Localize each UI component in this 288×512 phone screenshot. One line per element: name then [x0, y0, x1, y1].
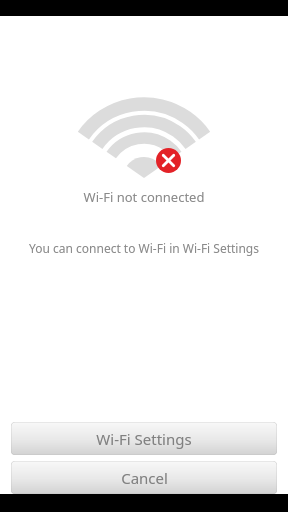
staticText: Wi-Fi Settings: [96, 429, 192, 449]
staticText: Wi-Fi not connected: [0, 188, 288, 206]
button[interactable]: Wi-Fi Settings: [11, 422, 277, 455]
staticText: Cancel: [121, 468, 168, 488]
other: Not connected: [156, 148, 181, 173]
button[interactable]: Cancel: [11, 461, 277, 494]
staticText: You can connect to Wi-Fi in Wi-Fi Settin…: [16, 240, 272, 256]
